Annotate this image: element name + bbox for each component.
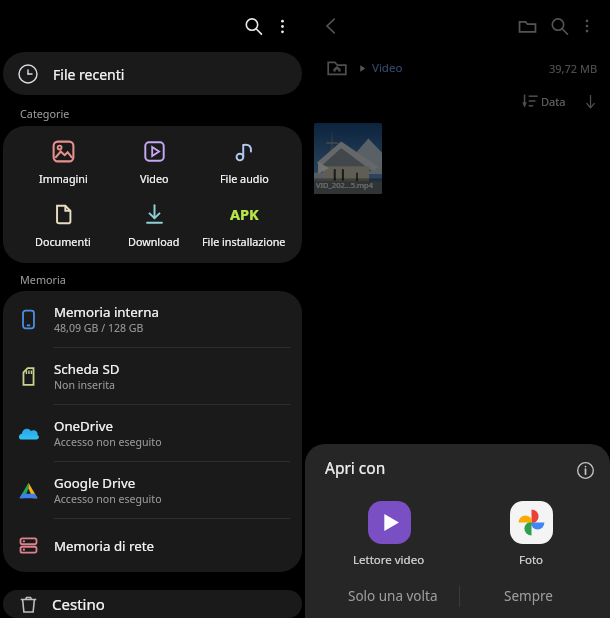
button[interactable]: Sempre [460, 574, 597, 618]
staticText: VID_202...5.mp4 [316, 180, 373, 190]
button[interactable]: Scheda SD [3, 348, 302, 405]
staticText: Data [541, 94, 566, 109]
staticText: Lettore video [353, 552, 425, 568]
staticText: Cestino [52, 594, 105, 614]
staticText: File installazione [202, 234, 286, 249]
staticText: File audio [220, 171, 269, 186]
button[interactable]: File recenti [3, 52, 302, 95]
staticText: Solo una volta [348, 587, 438, 605]
button[interactable]: OneDrive [3, 405, 302, 462]
button[interactable]: Sort direction [575, 86, 605, 116]
button[interactable]: More options [264, 8, 300, 44]
staticText: OneDrive [54, 417, 113, 435]
staticText: Video [372, 60, 403, 76]
staticText: Sempre [504, 587, 553, 605]
button[interactable]: Immagini [18, 139, 108, 189]
button[interactable]: Download [109, 202, 199, 252]
staticText: Memoria di rete [54, 537, 154, 555]
button[interactable]: Memoria di rete [3, 519, 302, 572]
staticText: Memoria interna [54, 303, 159, 321]
staticText: Download [128, 234, 180, 249]
button[interactable]: Lettore video [339, 501, 439, 573]
staticText: APK [230, 204, 259, 224]
staticText: Accesso non eseguito [54, 492, 162, 506]
staticText: Non inserita [54, 378, 115, 392]
button[interactable]: Documenti [18, 202, 108, 252]
button[interactable]: VID_202...5.mp4 [314, 123, 382, 194]
staticText: File recenti [53, 65, 125, 84]
button[interactable]: APK [199, 202, 289, 252]
button[interactable]: Memoria interna [3, 291, 302, 348]
staticText: Video [140, 171, 169, 186]
button[interactable]: Search [542, 9, 576, 43]
button[interactable]: Video [109, 139, 199, 189]
button[interactable]: Data [541, 86, 566, 116]
staticText: Foto [519, 552, 544, 568]
staticText: Categorie [20, 106, 70, 121]
staticText: Apri con [325, 457, 386, 478]
staticText: Memoria [20, 272, 66, 287]
staticText: 48,09 GB / 128 GB [54, 321, 144, 335]
button[interactable]: Sort order [515, 86, 545, 116]
button[interactable]: Solo una volta [327, 574, 459, 618]
button[interactable]: Video [327, 54, 403, 82]
staticText: Immagini [39, 171, 88, 186]
staticText: Scheda SD [54, 360, 120, 378]
button[interactable]: Cestino [3, 590, 302, 618]
button[interactable]: Info [571, 456, 599, 484]
button[interactable]: New folder [510, 9, 544, 43]
button[interactable]: File audio [199, 139, 289, 189]
button[interactable]: More options [570, 9, 604, 43]
button[interactable]: Google Drive [3, 462, 302, 519]
button[interactable]: Back [313, 8, 349, 44]
staticText: 39,72 MB [549, 61, 598, 76]
button[interactable]: Search [235, 8, 271, 44]
staticText: Documenti [35, 234, 91, 249]
staticText: Google Drive [54, 474, 136, 492]
staticText: Accesso non eseguito [54, 435, 162, 449]
button[interactable]: Foto [481, 501, 581, 573]
